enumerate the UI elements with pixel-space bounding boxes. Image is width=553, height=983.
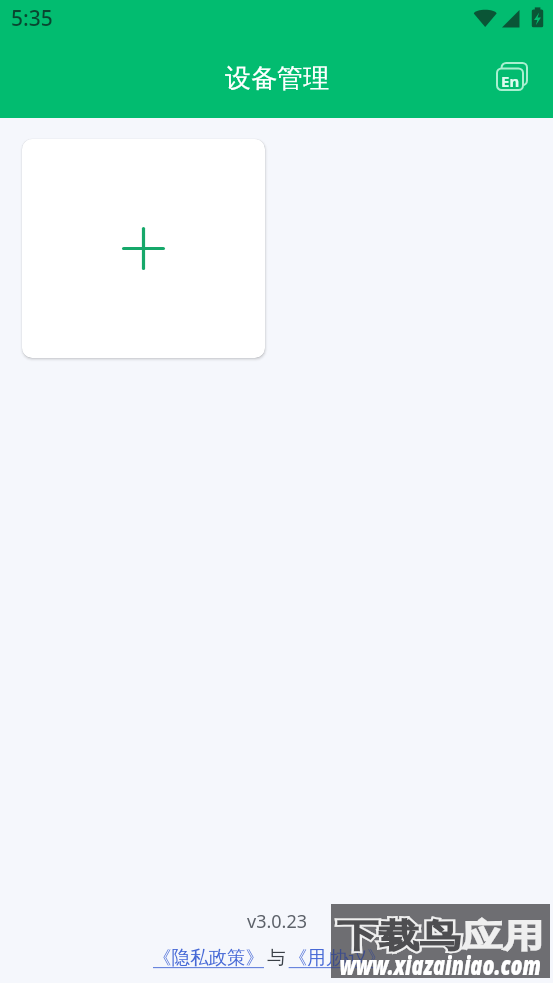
button[interactable]: Switch language — [490, 56, 534, 97]
staticText: 下载鸟应用 — [337, 916, 545, 958]
staticText: v3.0.23 — [247, 909, 307, 934]
staticText: En — [501, 71, 520, 91]
staticText: 设备管理 — [225, 62, 329, 95]
staticText: 《隐私政策》 与 《用户协议》 — [331, 944, 386, 969]
staticText: www.xiazainiao.com — [339, 947, 541, 978]
button[interactable]: 《隐私政策》 与 《用户协议》 — [153, 944, 400, 969]
button[interactable]: Add device — [22, 139, 265, 358]
staticText: 5:35 — [11, 4, 53, 33]
staticText: 下载鸟应用 — [337, 916, 545, 958]
